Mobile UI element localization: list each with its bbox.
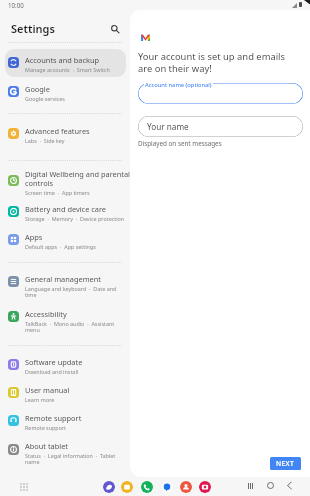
button[interactable] [5, 78, 126, 106]
button[interactable] [5, 120, 126, 148]
staticText: TalkBack · Mono audio · Assistant menu [25, 320, 125, 334]
staticText: Account name (optional) [145, 81, 212, 89]
button[interactable] [5, 199, 126, 227]
button[interactable] [5, 408, 126, 436]
staticText: 10:00 [8, 1, 24, 9]
staticText: Settings [11, 21, 55, 36]
button[interactable]: Recents [245, 480, 256, 491]
staticText: Your name [147, 121, 189, 132]
staticText: Software update [25, 357, 135, 367]
staticText: Remote support [25, 413, 135, 423]
staticText: Accessibility [25, 309, 135, 319]
staticText: Language and keyboard · Date and time [25, 285, 125, 299]
staticText: Your account is set up and emails are on… [138, 50, 296, 75]
button[interactable] [5, 49, 126, 77]
staticText: Download and install [25, 368, 125, 375]
button[interactable]: Phone [141, 481, 153, 493]
staticText: General management [25, 274, 135, 284]
staticText: Learn more [25, 396, 125, 403]
button[interactable]: Camera [199, 481, 211, 493]
staticText: Manage accounts · Smart Switch [25, 66, 125, 73]
staticText: Labs · Side key [25, 137, 125, 144]
button[interactable]: Internet [103, 481, 115, 493]
staticText: Accounts and backup [25, 55, 135, 65]
button[interactable]: Your name [138, 116, 303, 137]
button[interactable]: Messages [161, 481, 173, 493]
button[interactable]: NEXT [270, 457, 301, 470]
staticText: Screen time · App timers [25, 189, 125, 196]
button[interactable]: Search [107, 21, 122, 36]
staticText: Status · Legal information · Tablet name [25, 452, 125, 466]
button[interactable] [138, 83, 303, 104]
staticText: Google services [25, 95, 125, 102]
button[interactable]: My Files [121, 481, 133, 493]
staticText: Google [25, 84, 135, 94]
staticText: Digital Wellbeing and parental controls [25, 169, 135, 188]
staticText: Default apps · App settings [25, 243, 125, 250]
button[interactable] [5, 227, 126, 255]
button[interactable]: Contacts [180, 481, 192, 493]
button[interactable]: All apps [19, 482, 29, 492]
staticText: Apps [25, 232, 135, 242]
staticText: Advanced features [25, 126, 135, 136]
button[interactable]: Home [265, 480, 276, 491]
staticText: Displayed on sent messages [138, 139, 222, 148]
staticText: About tablet [25, 441, 135, 451]
button[interactable] [5, 379, 126, 407]
staticText: Storage · Memory · Device protection [25, 215, 125, 222]
button[interactable] [5, 269, 126, 297]
button[interactable] [5, 351, 126, 379]
staticText: Battery and device care [25, 204, 135, 214]
staticText: Remote support [25, 424, 125, 431]
button[interactable] [5, 164, 126, 192]
button[interactable]: Back [284, 480, 295, 491]
staticText: User manual [25, 385, 135, 395]
staticText: NEXT [276, 459, 295, 468]
button[interactable] [5, 303, 126, 331]
button[interactable] [5, 436, 126, 464]
